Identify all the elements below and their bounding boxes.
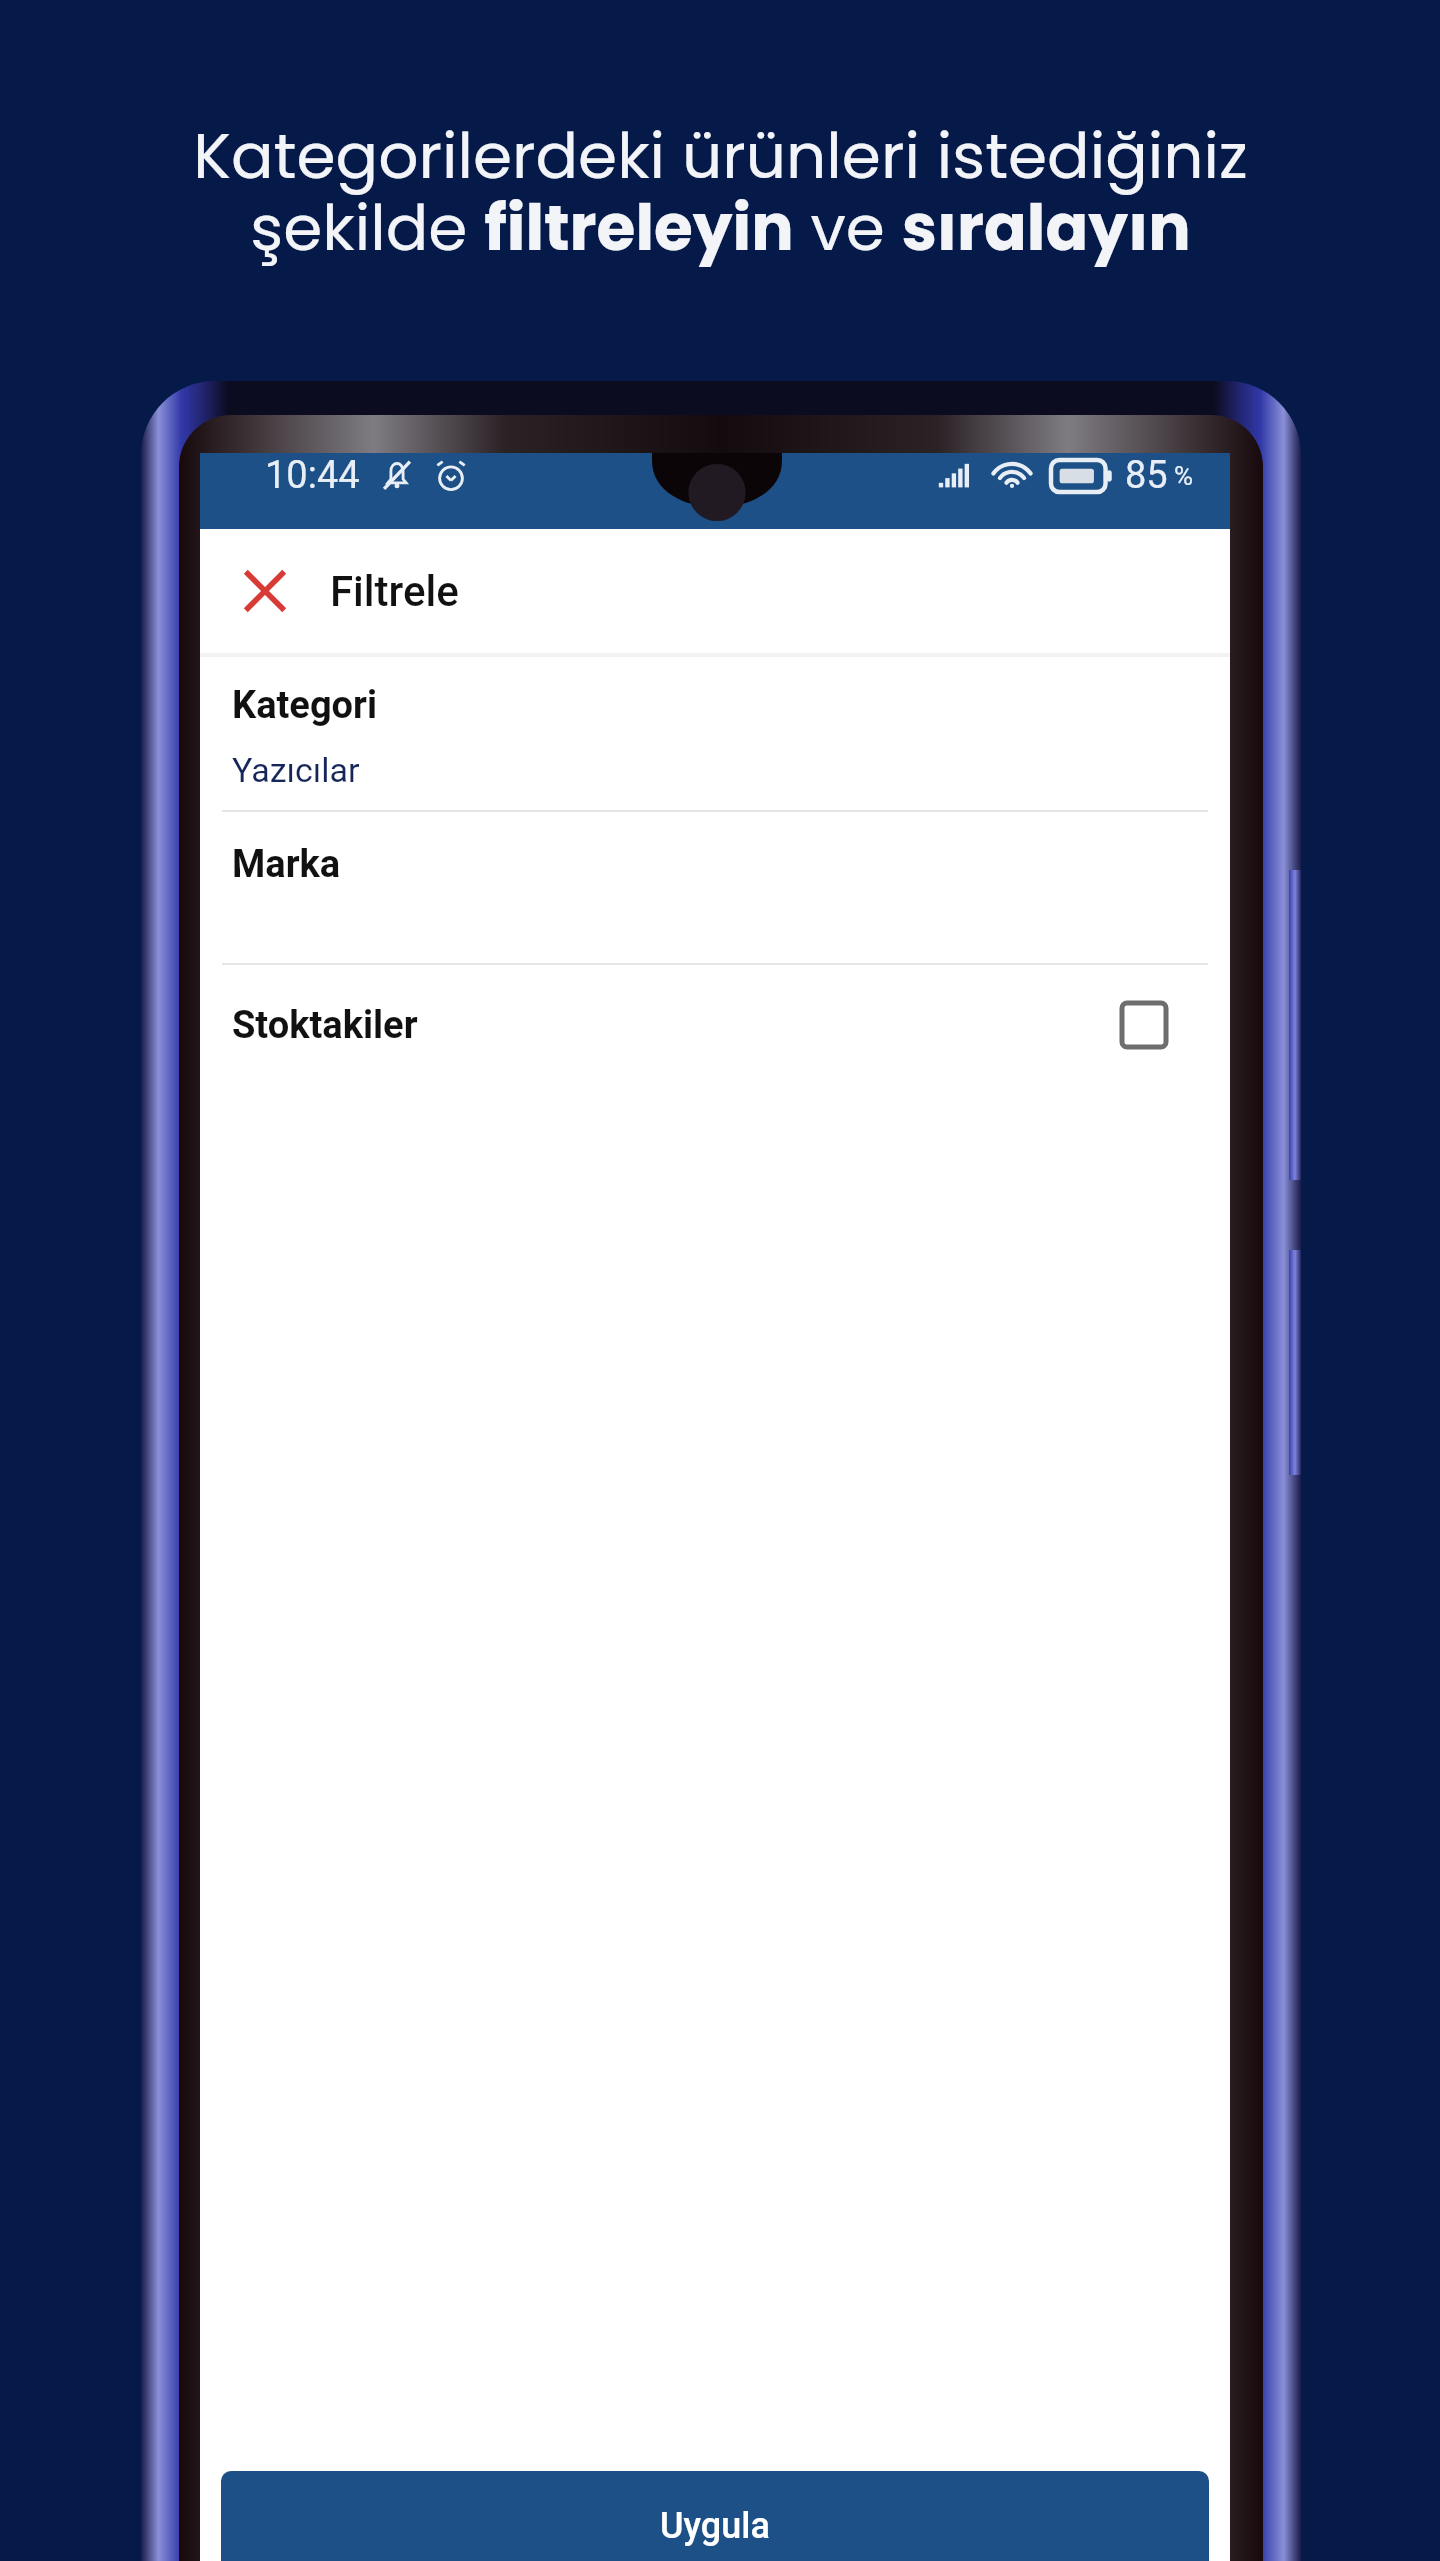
button[interactable]: Kapat	[200, 529, 330, 653]
staticText: 85	[1125, 453, 1168, 498]
staticText: Stoktakiler	[232, 1003, 418, 1048]
staticText: %	[1174, 461, 1194, 491]
staticText: Kategori	[232, 683, 378, 728]
button[interactable]: Yazıcılar	[232, 750, 1198, 790]
staticText: 10:44	[265, 453, 360, 498]
staticText: Uygula	[660, 2505, 770, 2547]
staticText: Marka	[232, 842, 341, 887]
staticText: Kategorilerdeki ürünleri istediğiniz şek…	[193, 112, 1248, 272]
button[interactable]: Uygula	[221, 2471, 1209, 2561]
staticText: Yazıcılar	[232, 750, 360, 790]
button[interactable]: Stoktakiler	[200, 965, 1230, 1085]
staticText: Filtrele	[330, 567, 459, 616]
